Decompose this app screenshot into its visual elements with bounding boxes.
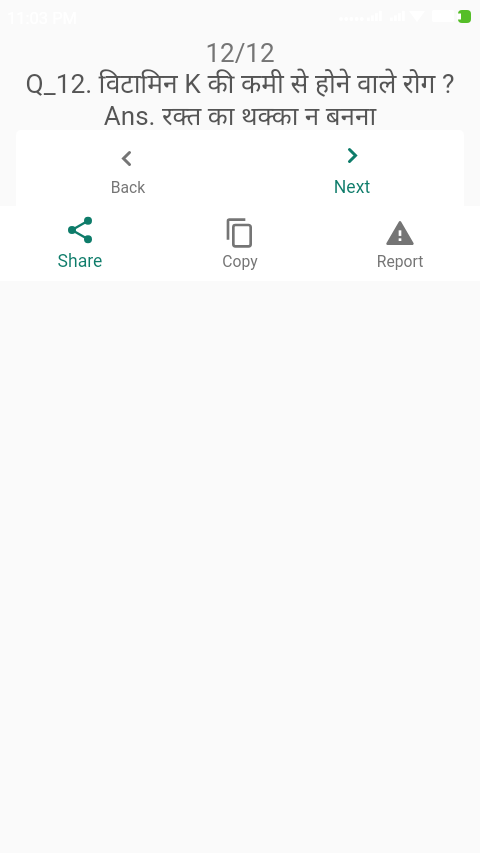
button[interactable]: Share xyxy=(0,206,160,281)
staticText: 12/12 xyxy=(0,38,480,68)
button[interactable]: Next xyxy=(240,130,464,206)
button[interactable]: Report xyxy=(320,206,480,281)
staticText: Back xyxy=(16,178,240,196)
staticText: Share xyxy=(0,251,160,272)
staticText: Copy xyxy=(160,252,320,270)
button[interactable]: Copy xyxy=(160,206,320,281)
staticText: Ans. रक्त का थक्का न बनना xyxy=(0,97,480,132)
button[interactable]: Back xyxy=(16,130,240,206)
staticText: Q_12. विटामिन K की कमी से होने वाले रोग … xyxy=(0,65,480,101)
staticText: Next xyxy=(240,177,464,198)
staticText: Report xyxy=(320,252,480,270)
